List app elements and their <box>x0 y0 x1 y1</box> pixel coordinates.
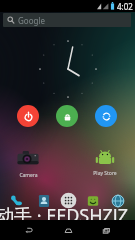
button[interactable]: Home <box>58 220 78 240</box>
button[interactable]: Restart <box>95 105 117 127</box>
button[interactable]: Power <box>17 105 39 127</box>
button[interactable]: Lock <box>56 105 78 127</box>
staticText: Play Store <box>93 170 117 177</box>
button[interactable]: Camera <box>13 147 43 179</box>
staticText: Camera <box>19 172 38 179</box>
button[interactable]: Google <box>3 13 131 27</box>
button[interactable]: Phone <box>8 192 25 209</box>
button[interactable]: Browser <box>109 192 126 209</box>
staticText: 4:02 <box>117 1 133 12</box>
button[interactable]: Back <box>19 220 39 240</box>
staticText: 动手 · EEDSHZJZ <box>0 203 129 228</box>
button[interactable]: People <box>35 192 52 209</box>
button[interactable]: Recents <box>96 220 116 240</box>
button[interactable]: Play Store <box>90 147 120 177</box>
staticText: Google <box>18 15 45 26</box>
button[interactable]: Play Store <box>84 192 101 209</box>
button[interactable]: Apps <box>60 192 77 209</box>
